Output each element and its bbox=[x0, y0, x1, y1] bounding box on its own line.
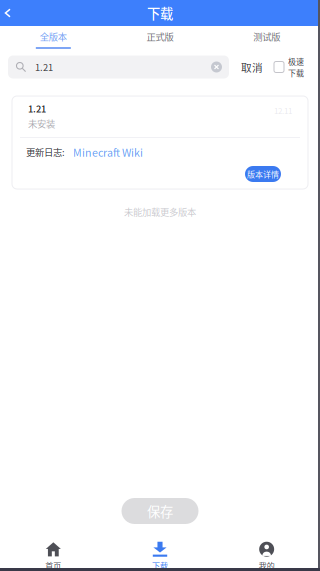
staticText: 我的 bbox=[259, 560, 275, 571]
button[interactable]: 保存 bbox=[121, 498, 198, 524]
staticText: Minecraft Wiki bbox=[73, 144, 143, 160]
staticText: 下载 bbox=[288, 67, 304, 79]
button[interactable]: 正式版 bbox=[107, 26, 213, 52]
staticText: 保存 bbox=[147, 501, 173, 521]
staticText: 12.11 bbox=[274, 105, 292, 116]
button[interactable]: 极速 bbox=[274, 55, 304, 78]
staticText: 更新日志: bbox=[26, 145, 65, 159]
staticText: 未安装 bbox=[28, 117, 55, 130]
button[interactable]: 返回 bbox=[0, 0, 16, 26]
staticText: 未能加载更多版本 bbox=[124, 205, 196, 218]
button[interactable]: 取消 bbox=[238, 55, 266, 78]
staticText: 取消 bbox=[241, 59, 263, 75]
staticText: 极速 bbox=[288, 55, 304, 67]
staticText: 1.21 bbox=[35, 60, 53, 74]
staticText: 测试版 bbox=[253, 30, 280, 43]
button[interactable]: 首页 bbox=[0, 537, 107, 571]
button[interactable]: 全版本 bbox=[0, 26, 107, 52]
staticText: 版本详情 bbox=[247, 168, 279, 180]
staticText: 下载 bbox=[147, 3, 173, 23]
button[interactable]: 版本详情 bbox=[245, 166, 281, 182]
button[interactable]: 我的 bbox=[213, 537, 320, 571]
button[interactable]: Minecraft Wiki bbox=[65, 144, 143, 160]
staticText: 下载 bbox=[152, 560, 168, 571]
button[interactable]: 清除 bbox=[211, 61, 222, 72]
button[interactable]: 下载 bbox=[107, 537, 213, 571]
staticText: 1.21 bbox=[28, 102, 46, 115]
staticText: 全版本 bbox=[40, 30, 67, 43]
staticText: 正式版 bbox=[146, 30, 173, 43]
staticText: 首页 bbox=[45, 560, 61, 571]
button[interactable]: 测试版 bbox=[213, 26, 320, 52]
